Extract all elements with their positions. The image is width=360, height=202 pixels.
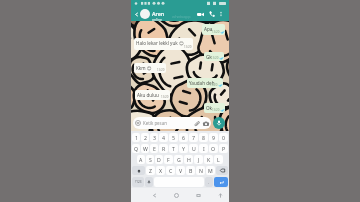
staticText: 1 <box>135 134 138 141</box>
button[interactable]: D <box>155 155 163 164</box>
button[interactable]: 7 <box>189 133 198 142</box>
staticText: J <box>198 156 200 163</box>
button[interactable]: Ketik pesan <box>133 117 211 129</box>
button[interactable]: Backspace <box>216 166 228 175</box>
button[interactable]: Q <box>132 144 140 153</box>
staticText: 13:20 <box>184 45 192 49</box>
button[interactable]: L <box>214 155 223 164</box>
staticText: Aku duluu <box>137 92 159 98</box>
staticText: 0 <box>222 134 225 141</box>
staticText: 13:20 <box>212 108 220 112</box>
staticText: M <box>208 167 213 174</box>
button[interactable]: B <box>186 166 195 175</box>
button[interactable]: 6 <box>179 133 188 142</box>
staticText: P <box>222 145 226 152</box>
button[interactable]: P <box>219 144 228 153</box>
button[interactable]: Voice input <box>145 177 153 187</box>
button[interactable]: 8 <box>199 133 208 142</box>
staticText: Kkm 😊 <box>136 65 152 71</box>
button[interactable]: ?123 <box>132 177 144 187</box>
staticText: 13:20 <box>211 56 219 60</box>
button[interactable]: 2 <box>141 133 149 142</box>
button[interactable]: Record voice message <box>213 117 225 129</box>
button[interactable]: M <box>206 166 215 175</box>
button[interactable]: W <box>141 144 149 153</box>
button[interactable]: 1 <box>132 133 140 142</box>
button[interactable]: . <box>205 177 213 187</box>
button[interactable]: Ok <box>204 103 225 113</box>
staticText: N <box>199 167 203 174</box>
staticText: Ok <box>206 105 213 111</box>
staticText: Halo lekar lekkl yuk 😊 <box>136 40 184 46</box>
button[interactable]: Voice call <box>207 9 217 19</box>
staticText: 4 <box>162 134 165 141</box>
button[interactable]: More options <box>217 10 225 18</box>
button[interactable]: 5 <box>169 133 178 142</box>
button[interactable]: N <box>196 166 205 175</box>
staticText: Apa <box>204 26 213 32</box>
staticText: V <box>179 167 183 174</box>
button[interactable]: H <box>184 155 193 164</box>
button[interactable]: O <box>209 144 218 153</box>
button[interactable]: 4 <box>159 133 168 142</box>
staticText: 8 <box>202 134 205 141</box>
button[interactable]: 9 <box>209 133 218 142</box>
button[interactable]: Video call <box>195 9 205 19</box>
button[interactable]: Enter <box>214 177 228 187</box>
button[interactable]: U <box>189 144 198 153</box>
button[interactable]: Attach <box>193 120 200 127</box>
staticText: 13:20 <box>161 95 169 99</box>
button[interactable]: I <box>199 144 208 153</box>
button[interactable]: Home <box>171 190 181 200</box>
button[interactable]: C <box>166 166 175 175</box>
staticText: 3 <box>153 134 156 141</box>
staticText: 2 <box>144 134 147 141</box>
button[interactable]: Kkm 😊 <box>134 63 166 73</box>
button[interactable]: Profile photo <box>140 9 150 19</box>
staticText: online <box>152 17 162 22</box>
staticText: 13:20 <box>210 83 218 87</box>
staticText: L <box>217 156 220 163</box>
staticText: Aren <box>152 10 165 17</box>
button[interactable]: Shift <box>132 166 145 175</box>
button[interactable]: Camera <box>202 120 209 127</box>
button[interactable]: Back <box>133 11 140 18</box>
button[interactable]: V <box>176 166 185 175</box>
button[interactable]: 0 <box>219 133 228 142</box>
staticText: 6 <box>182 134 185 141</box>
staticText: O <box>211 145 216 152</box>
button[interactable]: K <box>204 155 213 164</box>
button[interactable]: F <box>164 155 173 164</box>
staticText: G <box>177 156 181 163</box>
button[interactable]: Y <box>179 144 188 153</box>
button[interactable]: Gk <box>204 52 224 61</box>
staticText: 13:20 <box>157 68 165 72</box>
staticText: R <box>162 145 166 152</box>
button[interactable]: Back <box>149 190 159 200</box>
staticText: B <box>189 167 193 174</box>
button[interactable]: S <box>146 155 154 164</box>
button[interactable]: A <box>137 155 145 164</box>
staticText: H <box>187 156 191 163</box>
button[interactable]: Halo lekar lekkl yuk 😊 <box>134 38 193 50</box>
button[interactable]: E <box>150 144 158 153</box>
staticText: T <box>172 145 175 152</box>
button[interactable]: J <box>194 155 203 164</box>
button[interactable]: Z <box>146 166 155 175</box>
button[interactable]: R <box>159 144 168 153</box>
staticText: E <box>153 145 156 152</box>
button[interactable]: X <box>156 166 165 175</box>
staticText: Gk <box>206 54 212 60</box>
button[interactable]: Yaudah deh <box>187 78 223 88</box>
button[interactable]: Apa <box>202 24 225 35</box>
button[interactable]: T <box>169 144 178 153</box>
button[interactable]: Hide keyboard <box>215 190 225 200</box>
staticText: C <box>169 167 173 174</box>
staticText: D <box>157 156 161 163</box>
staticText: Z <box>149 167 152 174</box>
button[interactable]: Aku duluu <box>135 90 170 100</box>
button[interactable]: 3 <box>150 133 158 142</box>
button[interactable]: G <box>174 155 183 164</box>
button[interactable]: Recents <box>193 190 203 200</box>
